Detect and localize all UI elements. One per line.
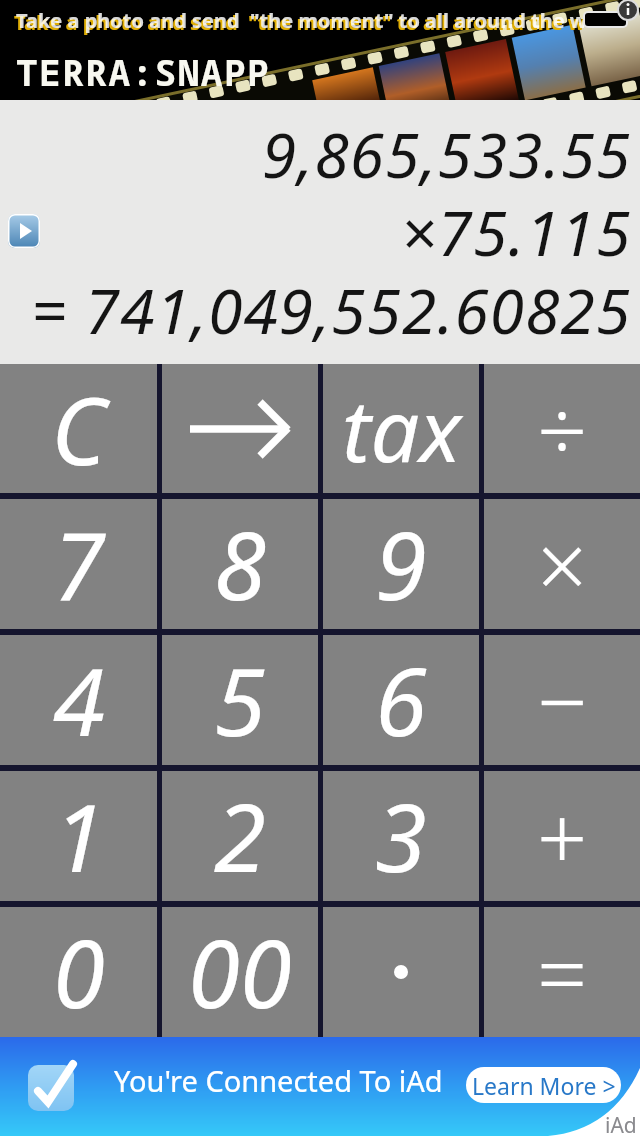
staticText: 2 <box>214 772 266 900</box>
staticText: 7 <box>53 500 105 628</box>
button[interactable]: 8 <box>162 499 318 629</box>
button[interactable]: 6 <box>323 635 479 765</box>
button[interactable]: 2 <box>162 771 318 901</box>
staticText: 4 <box>53 636 105 764</box>
staticText: 9 <box>375 500 427 628</box>
staticText: Learn More > <box>472 1070 616 1101</box>
staticText: 00 <box>188 908 292 1036</box>
button[interactable]: 4 <box>0 635 157 765</box>
staticText: 1 <box>53 772 105 900</box>
staticText: × <box>537 504 588 624</box>
staticText: = <box>537 912 588 1032</box>
button[interactable]: 00 <box>162 907 318 1037</box>
button[interactable] <box>162 364 318 493</box>
staticText: ×75.115 <box>401 190 632 274</box>
button[interactable]: 9 <box>323 499 479 629</box>
staticText: C <box>51 365 107 493</box>
staticText: = 741,049,552.60825 <box>31 268 632 352</box>
staticText: 8 <box>214 500 266 628</box>
button[interactable]: × <box>484 499 640 629</box>
staticText: iAd <box>605 1111 637 1136</box>
staticText: 6 <box>375 636 427 764</box>
button[interactable]: − <box>484 635 640 765</box>
button[interactable]: 7 <box>0 499 157 629</box>
staticText: − <box>537 640 588 760</box>
button[interactable]: Take a photo and send "the moment" to al… <box>0 0 640 100</box>
button[interactable]: 5 <box>162 635 318 765</box>
staticText: ÷ <box>537 369 588 489</box>
staticText: 9,865,533.55 <box>262 112 632 196</box>
button[interactable]: ÷ <box>484 364 640 493</box>
button[interactable]: + <box>484 771 640 901</box>
staticText: tax <box>342 370 461 487</box>
button[interactable]: 1 <box>0 771 157 901</box>
button[interactable]: You're Connected To iAd <box>0 1037 640 1136</box>
button[interactable]: 3 <box>323 771 479 901</box>
staticText: Take a photo and send "the moment" to al… <box>14 9 585 36</box>
button[interactable] <box>323 907 479 1037</box>
button[interactable]: 0 <box>0 907 157 1037</box>
button[interactable]: = <box>484 907 640 1037</box>
button[interactable]: Learn More > <box>466 1067 621 1103</box>
staticText: 3 <box>375 772 427 900</box>
staticText: 0 <box>53 908 105 1036</box>
button[interactable]: tax <box>323 364 479 493</box>
staticText: TERRA:SNAPP <box>16 48 271 97</box>
staticText: You're Connected To iAd <box>114 1061 443 1100</box>
staticText: Take a photo and send "the moment" to al… <box>16 7 587 34</box>
staticText: + <box>537 776 588 896</box>
button[interactable]: C <box>0 364 157 493</box>
button[interactable] <box>8 214 40 248</box>
staticText: 5 <box>214 636 266 764</box>
